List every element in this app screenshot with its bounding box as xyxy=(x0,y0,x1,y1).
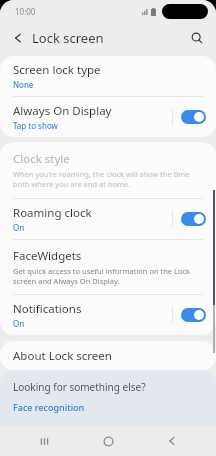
staticText: On xyxy=(13,318,25,329)
staticText: None xyxy=(13,79,34,90)
button[interactable]: Toggle on xyxy=(181,308,206,322)
button[interactable]: Back xyxy=(152,426,192,456)
staticText: When you're roaming, the clock will show… xyxy=(13,169,200,189)
staticText: FaceWidgets xyxy=(13,248,82,264)
staticText: Tap to show xyxy=(13,120,58,131)
staticText: Screen lock type xyxy=(13,62,101,78)
staticText: Clock style xyxy=(13,151,70,167)
button[interactable]: Recents xyxy=(24,426,64,456)
staticText: On xyxy=(13,222,25,233)
button[interactable]: Always On Display xyxy=(0,97,216,137)
staticText: Notifications xyxy=(13,301,82,317)
staticText: Get quick access to useful information o… xyxy=(13,266,198,286)
button[interactable]: Roaming clock xyxy=(0,199,216,239)
button[interactable]: Back xyxy=(8,28,28,48)
button[interactable]: Notifications xyxy=(0,295,216,335)
staticText: 10:00 xyxy=(15,6,36,17)
staticText: Face recognition xyxy=(13,401,85,413)
staticText: Looking for something else? xyxy=(13,380,146,394)
button[interactable]: FaceWidgets xyxy=(0,240,216,294)
button[interactable]: Search xyxy=(187,28,207,48)
staticText: Lock screen xyxy=(32,29,187,47)
staticText: Always On Display xyxy=(13,103,112,119)
button[interactable]: Toggle on xyxy=(181,212,206,226)
staticText: Roaming clock xyxy=(13,205,92,221)
button[interactable]: Face recognition xyxy=(13,401,85,413)
button[interactable]: Screen lock type xyxy=(0,56,216,96)
button[interactable]: About Lock screen xyxy=(0,341,216,370)
button[interactable]: Toggle on xyxy=(181,110,206,124)
staticText: About Lock screen xyxy=(13,348,112,364)
button[interactable]: Home xyxy=(88,426,128,456)
